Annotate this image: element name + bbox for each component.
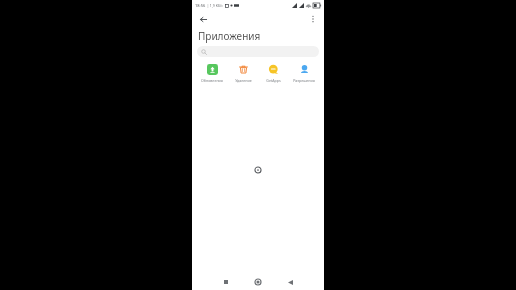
- staticText: Удаление: [235, 78, 252, 83]
- button[interactable]: [197, 46, 319, 57]
- button[interactable]: Назад: [280, 274, 300, 290]
- staticText: | 1,9 КБ/с: [207, 3, 224, 8]
- staticText: Разрешения: [293, 78, 315, 83]
- button[interactable]: Обновления: [197, 62, 227, 84]
- button[interactable]: Недавние: [216, 274, 236, 290]
- button[interactable]: Разрешения: [289, 62, 319, 84]
- staticText: Приложения: [198, 29, 261, 43]
- button[interactable]: GetApps: [258, 62, 288, 84]
- button[interactable]: Главный экран: [248, 274, 268, 290]
- button[interactable]: Удаление: [228, 62, 258, 84]
- button[interactable]: Ещё: [307, 13, 319, 25]
- staticText: Обновления: [201, 78, 223, 83]
- staticText: GetApps: [266, 78, 281, 83]
- button[interactable]: Назад: [197, 13, 209, 25]
- staticText: 18:56: [195, 3, 206, 8]
